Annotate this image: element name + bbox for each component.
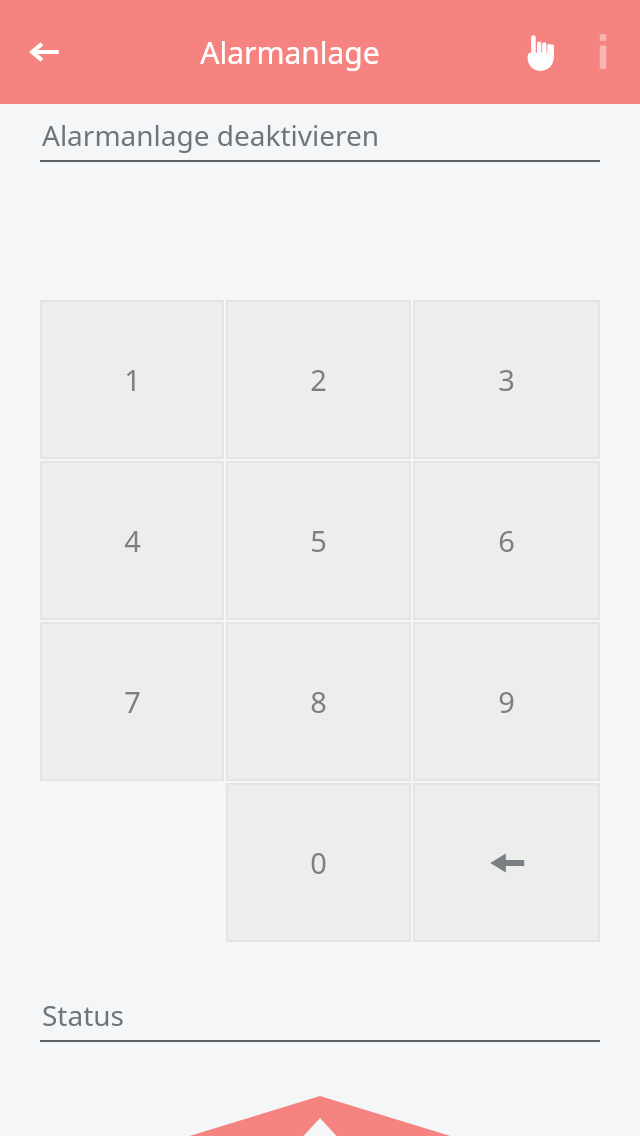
staticText: 7 — [124, 682, 141, 721]
staticText: Alarmanlage deaktivieren — [42, 116, 380, 154]
staticText: Alarmanlage — [200, 32, 380, 73]
staticText: 8 — [310, 682, 327, 721]
button[interactable]: 2 — [226, 300, 411, 459]
button[interactable]: 4 — [40, 461, 224, 620]
button[interactable]: 3 — [413, 300, 600, 459]
staticText: Status — [42, 996, 125, 1034]
button[interactable]: 9 — [413, 622, 600, 781]
staticText: 3 — [498, 360, 515, 399]
staticText: 1 — [124, 360, 141, 399]
button[interactable]: 8 — [226, 622, 411, 781]
button[interactable]: 6 — [413, 461, 600, 620]
button[interactable]: Touch mode — [510, 21, 572, 83]
staticText: 4 — [124, 521, 141, 560]
staticText: 0 — [310, 843, 327, 882]
staticText: 9 — [498, 682, 515, 721]
button[interactable]: Backspace — [413, 783, 600, 942]
button[interactable]: 0 — [226, 783, 411, 942]
staticText: 2 — [310, 360, 327, 399]
button[interactable]: 1 — [40, 300, 224, 459]
button[interactable]: Info — [572, 21, 634, 83]
button[interactable]: 5 — [226, 461, 411, 620]
button[interactable]: Back — [14, 21, 76, 83]
button[interactable]: 7 — [40, 622, 224, 781]
staticText: 5 — [310, 521, 327, 560]
staticText: 6 — [498, 521, 515, 560]
